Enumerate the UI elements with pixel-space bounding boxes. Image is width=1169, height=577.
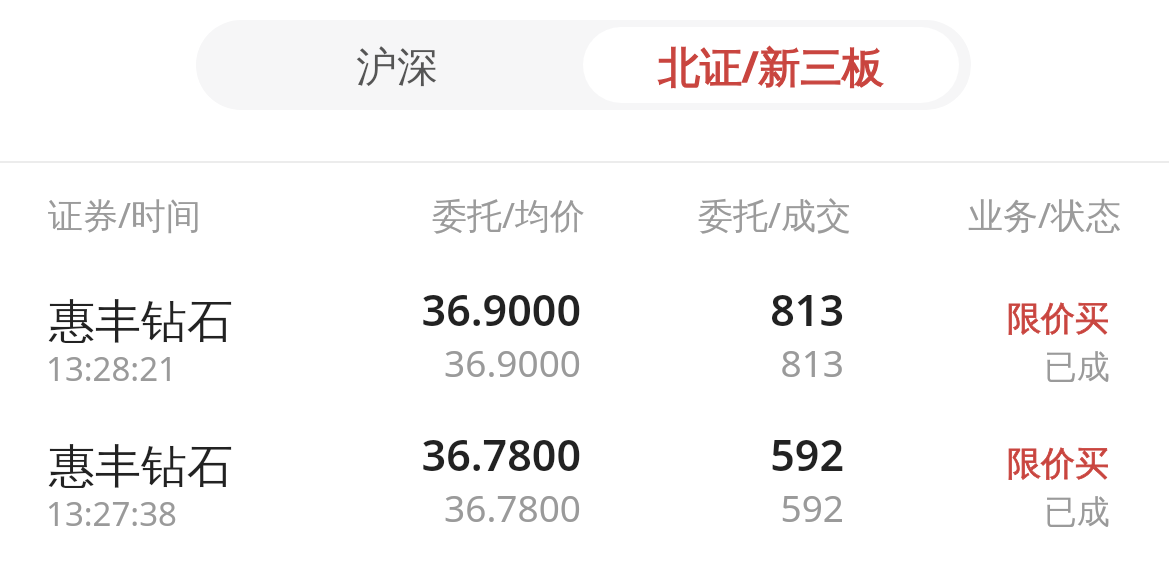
staticText: 北证/新三板 bbox=[658, 37, 885, 94]
staticText: 惠丰钻石 bbox=[49, 293, 233, 351]
staticText: 限价买 bbox=[809, 442, 1109, 485]
staticText: 委托/均价 bbox=[285, 191, 585, 239]
staticText: 592 bbox=[544, 482, 844, 532]
staticText: 限价买 bbox=[809, 297, 1109, 340]
button[interactable]: 北证/新三板 bbox=[583, 27, 959, 103]
staticText: 惠丰钻石 bbox=[49, 438, 233, 496]
staticText: 813 bbox=[544, 280, 844, 339]
staticText: 36.9000 bbox=[281, 337, 581, 387]
staticText: 限价买 bbox=[809, 297, 1109, 340]
staticText: 北证/新三板 bbox=[658, 37, 885, 94]
staticText: 业务/状态 bbox=[821, 191, 1121, 239]
staticText: 证券/时间 bbox=[48, 191, 202, 239]
staticText: 36.9000 bbox=[281, 280, 581, 339]
staticText: 限价买 bbox=[809, 442, 1109, 485]
staticText: 13:28:21 bbox=[46, 346, 177, 391]
button[interactable]: 惠丰钻石 bbox=[0, 412, 1169, 557]
staticText: 委托/成交 bbox=[551, 191, 851, 239]
staticText: 36.7800 bbox=[281, 482, 581, 532]
staticText: 已成 bbox=[810, 346, 1110, 388]
staticText: 13:27:38 bbox=[46, 491, 177, 536]
staticText: 813 bbox=[544, 337, 844, 387]
button[interactable]: 沪深 bbox=[196, 20, 583, 110]
staticText: 已成 bbox=[810, 491, 1110, 533]
staticText: 592 bbox=[544, 425, 844, 484]
staticText: 沪深 bbox=[356, 42, 438, 94]
button[interactable]: 惠丰钻石 bbox=[0, 267, 1169, 412]
staticText: 36.7800 bbox=[281, 425, 581, 484]
